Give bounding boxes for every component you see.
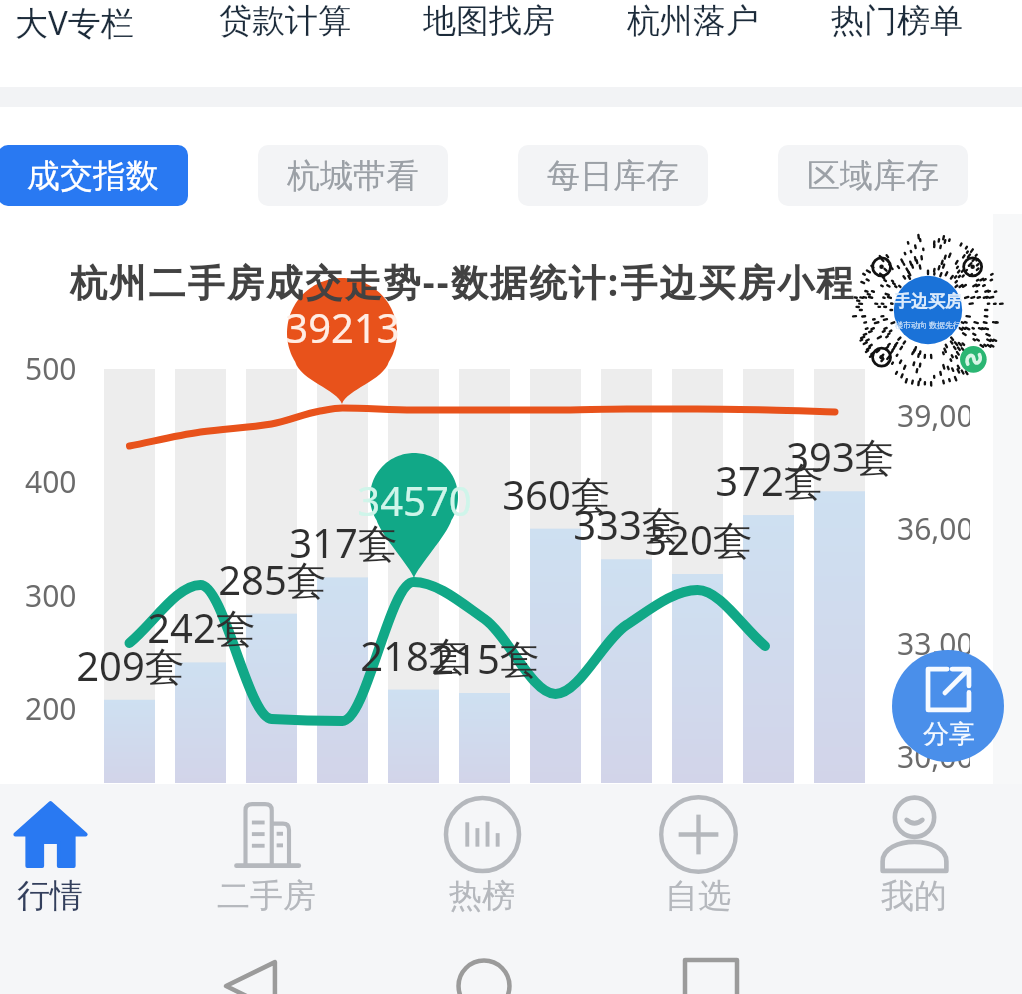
staticText: 自选 xyxy=(665,875,731,917)
button[interactable]: 行情 xyxy=(0,797,140,917)
staticText: 209套 xyxy=(76,638,185,693)
button[interactable]: 热门榜单 xyxy=(831,0,965,60)
staticText: 36,000 xyxy=(897,508,970,549)
staticText: 218套 xyxy=(360,628,469,683)
staticText: 400 xyxy=(25,461,77,502)
button[interactable]: 每日库存 xyxy=(518,145,708,206)
staticText: 热榜 xyxy=(449,875,515,917)
staticText: 215套 xyxy=(431,631,540,686)
staticText: 393套 xyxy=(786,429,895,484)
staticText: 大V专栏 xyxy=(15,0,134,45)
staticText: 33,000 xyxy=(897,623,970,664)
staticText: 分享 xyxy=(923,718,975,751)
button[interactable]: 贷款计算 xyxy=(219,0,353,60)
staticText: 区域库存 xyxy=(807,155,939,197)
button[interactable]: 我的 xyxy=(824,797,1004,917)
staticText: 242套 xyxy=(147,600,256,655)
staticText: 热门榜单 xyxy=(831,0,963,42)
staticText: 行情 xyxy=(17,875,83,917)
staticText: 每日库存 xyxy=(547,155,679,197)
button[interactable]: 地图找房 xyxy=(423,0,557,60)
staticText: 成交指数 xyxy=(27,155,159,197)
button[interactable]: 热榜 xyxy=(392,797,572,917)
staticText: 杭城带看 xyxy=(287,155,419,197)
button[interactable]: 成交指数 xyxy=(0,145,188,206)
staticText: 34570 xyxy=(357,473,472,527)
staticText: 300 xyxy=(25,575,77,616)
button[interactable]: 杭州落户 xyxy=(627,0,761,60)
button[interactable]: 自选 xyxy=(608,797,788,917)
staticText: 杭州落户 xyxy=(627,0,759,42)
staticText: 200 xyxy=(25,688,77,729)
staticText: 贷款计算 xyxy=(219,0,351,42)
staticText: 500 xyxy=(25,348,77,389)
staticText: 320套 xyxy=(644,512,753,567)
button[interactable]: 二手房 xyxy=(176,797,356,917)
staticText: 285套 xyxy=(218,552,327,607)
staticText: 333套 xyxy=(573,497,682,552)
button[interactable]: 大V专栏 xyxy=(15,0,149,60)
staticText: 我的 xyxy=(881,875,947,917)
button[interactable]: 杭城带看 xyxy=(258,145,448,206)
staticText: 30,000 xyxy=(897,736,970,777)
button[interactable]: 区域库存 xyxy=(778,145,968,206)
staticText: 二手房 xyxy=(217,875,316,917)
staticText: 39213 xyxy=(285,300,400,354)
staticText: 楼市动向 数据先行 xyxy=(895,319,962,330)
staticText: 39,000 xyxy=(897,395,970,436)
staticText: 372套 xyxy=(715,453,824,508)
staticText: 360套 xyxy=(502,467,611,522)
staticText: 地图找房 xyxy=(423,0,555,42)
button[interactable]: 分享 xyxy=(892,650,1004,762)
staticText: 317套 xyxy=(289,515,398,570)
staticText: 手边买房 xyxy=(894,291,962,312)
staticText: 杭州二手房成交走势--数据统计:手边买房小程 xyxy=(70,256,856,307)
